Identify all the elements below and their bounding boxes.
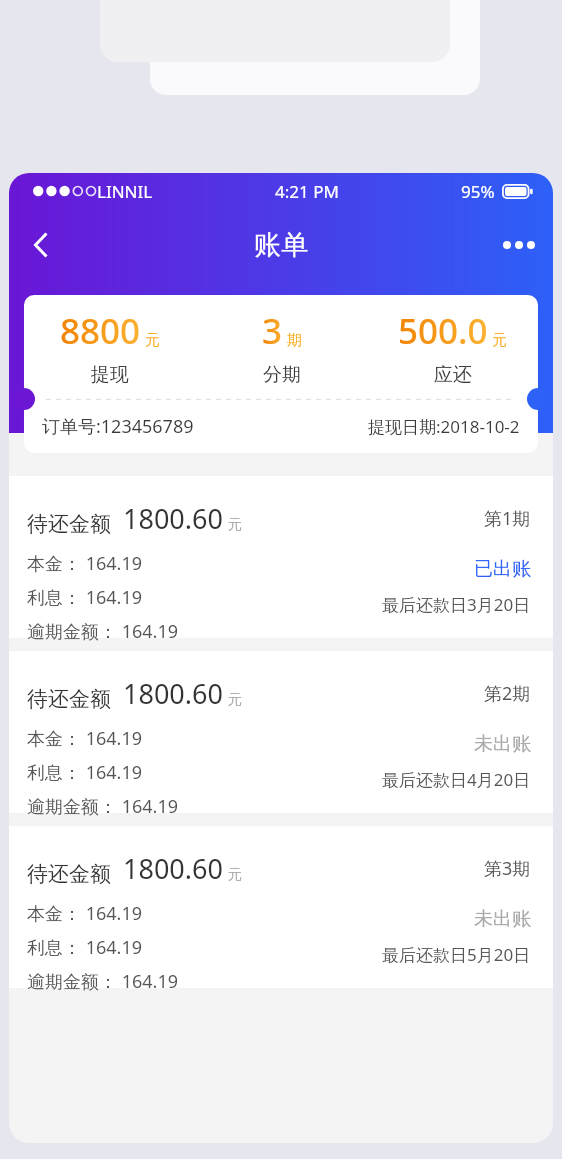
staticText: 第1期 (484, 506, 531, 531)
staticText: 应还 (434, 363, 472, 387)
button[interactable]: More options (493, 219, 545, 271)
staticText: 元 (228, 516, 242, 534)
staticText: 逾期金额： 164.19 (27, 794, 178, 819)
staticText: 分期 (263, 363, 301, 387)
staticText: 本金： 164.19 (27, 901, 142, 926)
staticText: 1800.60 (123, 500, 223, 537)
staticText: 元 (492, 331, 507, 350)
button[interactable]: 待还金额 (9, 826, 553, 988)
staticText: 待还金额 (27, 861, 111, 887)
staticText: 最后还款日5月20日 (382, 943, 531, 966)
staticText: 元 (228, 691, 242, 709)
staticText: 本金： 164.19 (27, 726, 142, 751)
staticText: 待还金额 (27, 511, 111, 537)
staticText: 第2期 (484, 681, 531, 706)
staticText: 账单 (254, 228, 308, 262)
staticText: 4:21 PM (275, 180, 339, 203)
button[interactable]: 待还金额 (9, 476, 553, 638)
staticText: 逾期金额： 164.19 (27, 619, 178, 644)
staticText: 利息： 164.19 (27, 760, 142, 785)
staticText: 提现日期:2018-10-2 (368, 415, 520, 438)
staticText: 最后还款日4月20日 (382, 768, 531, 791)
staticText: 95% (461, 180, 495, 203)
staticText: 逾期金额： 164.19 (27, 969, 178, 994)
staticText: 订单号:123456789 (42, 414, 194, 439)
staticText: 未出账 (474, 907, 531, 931)
staticText: 未出账 (474, 732, 531, 756)
staticText: 1800.60 (123, 850, 223, 887)
staticText: 已出账 (474, 557, 531, 581)
staticText: 元 (145, 331, 160, 350)
staticText: 利息： 164.19 (27, 585, 142, 610)
staticText: 1800.60 (123, 675, 223, 712)
staticText: 待还金额 (27, 686, 111, 712)
staticText: 本金： 164.19 (27, 551, 142, 576)
staticText: 8800 (60, 307, 141, 355)
staticText: 利息： 164.19 (27, 935, 142, 960)
button[interactable]: Back (15, 219, 67, 271)
staticText: 3 (262, 307, 283, 355)
staticText: 提现 (91, 363, 129, 387)
staticText: 最后还款日3月20日 (382, 593, 531, 616)
staticText: 元 (228, 866, 242, 884)
staticText: 500.0 (398, 307, 488, 355)
button[interactable]: 待还金额 (9, 651, 553, 813)
staticText: LINNIL (97, 180, 153, 203)
staticText: 期 (287, 331, 302, 350)
staticText: 第3期 (484, 856, 531, 881)
